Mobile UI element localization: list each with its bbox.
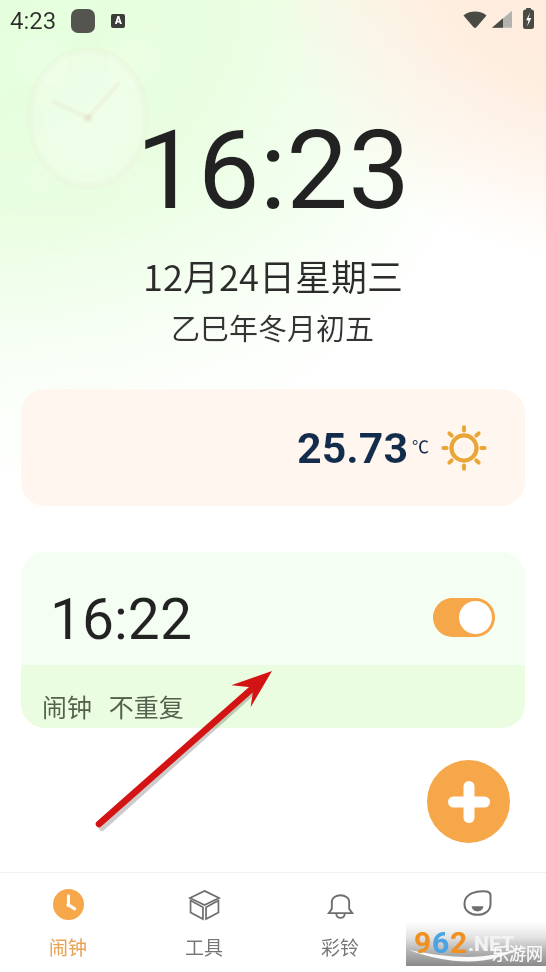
staticText: 工具 — [185, 933, 224, 961]
button[interactable]: Profile — [409, 873, 546, 972]
button[interactable]: Ringtones — [272, 873, 409, 972]
staticText: 9 — [414, 925, 432, 960]
staticText: 闹钟 不重复 — [42, 688, 184, 724]
staticText: 4:23 — [10, 7, 57, 35]
staticText: 闹钟 — [49, 933, 88, 961]
staticText: 16:22 — [50, 586, 192, 653]
button[interactable]: Toggle alarm — [433, 598, 495, 637]
staticText: A — [115, 15, 122, 27]
staticText: 25.73 — [297, 423, 409, 473]
staticText: 乙巳年冬月初五 — [171, 306, 375, 348]
button[interactable]: 25.73 — [21, 389, 525, 506]
staticText: 乐游网 — [492, 940, 543, 965]
staticText: 彩铃 — [321, 933, 360, 961]
staticText: 2 — [450, 925, 468, 960]
staticText: 6 — [432, 925, 450, 960]
staticText: 16:23 — [136, 106, 410, 218]
button[interactable]: Alarm — [0, 873, 136, 972]
button[interactable]: 16:22 — [21, 552, 525, 728]
staticText: .NET — [468, 932, 514, 957]
button[interactable]: Add alarm — [427, 760, 510, 843]
staticText: 12月24日星期三 — [143, 249, 403, 295]
button[interactable]: Tools — [136, 873, 272, 972]
staticText: ℃ — [412, 433, 429, 458]
